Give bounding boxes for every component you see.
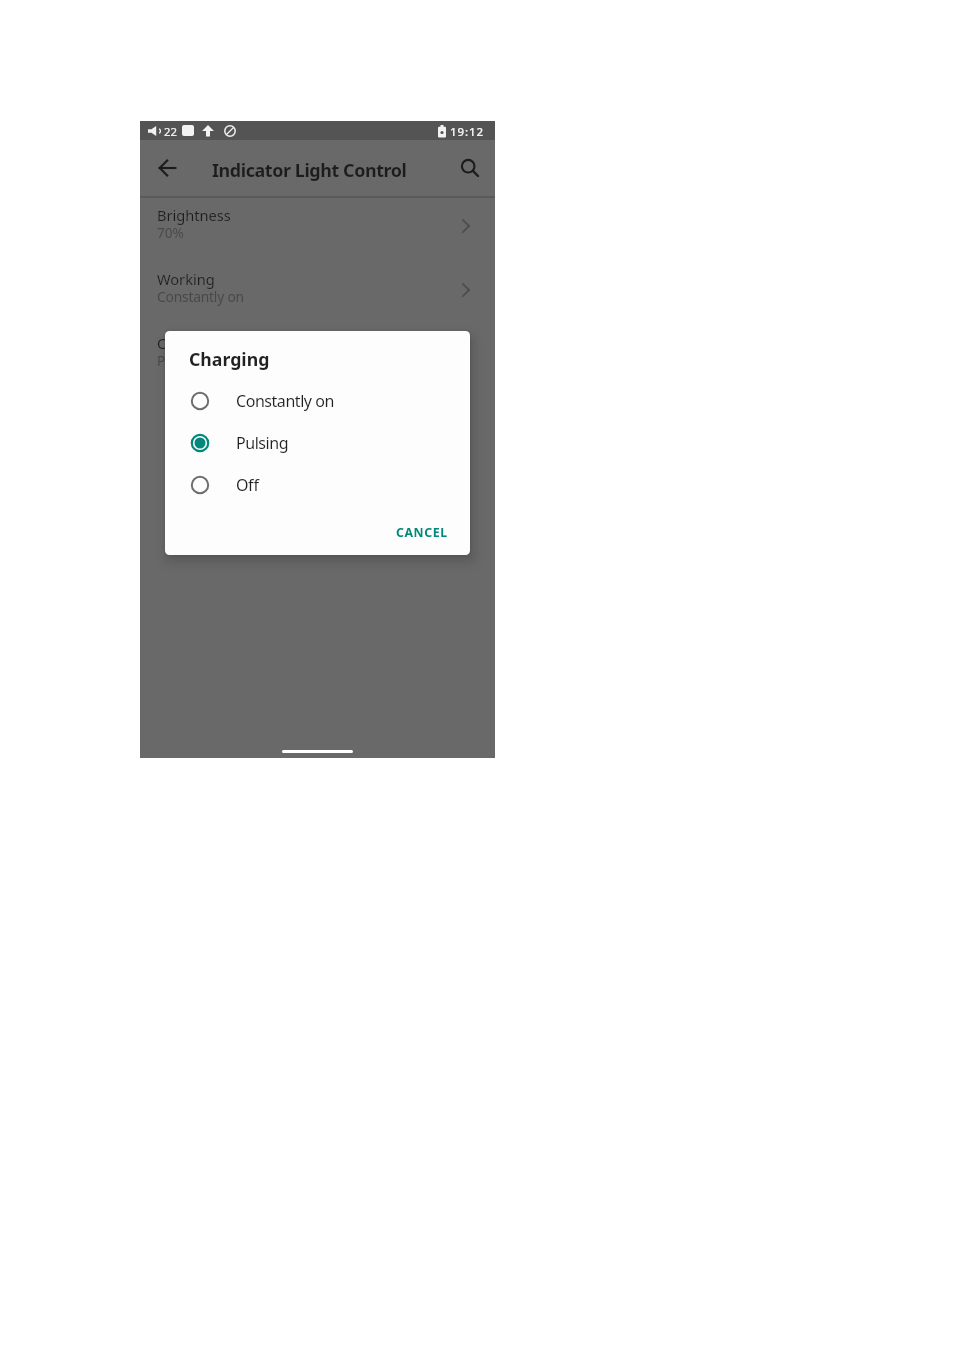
staticText: Indicator Light Control (212, 158, 407, 182)
button[interactable]: Working (140, 268, 495, 332)
button[interactable] (453, 151, 487, 185)
staticText: Brightness (157, 205, 231, 225)
staticText: Working (157, 269, 215, 289)
button[interactable]: Off (165, 464, 470, 506)
button[interactable] (150, 151, 184, 185)
button[interactable]: Brightness (140, 204, 495, 268)
staticText: Pulsing (157, 351, 205, 370)
button[interactable]: Pulsing (165, 422, 470, 464)
staticText: Pulsing (236, 432, 289, 454)
staticText: Off (236, 474, 259, 496)
staticText: 19:12 (450, 124, 484, 140)
staticText: Constantly on (236, 390, 334, 412)
staticText: 70% (157, 223, 184, 242)
button[interactable]: Charging (140, 332, 495, 396)
button[interactable]: CANCEL (384, 516, 460, 548)
staticText: CANCEL (396, 524, 448, 541)
staticText: Charging (157, 333, 221, 353)
staticText: Charging (189, 347, 270, 371)
staticText: 22 (164, 124, 178, 140)
staticText: Constantly on (157, 287, 244, 306)
button[interactable]: Constantly on (165, 380, 470, 422)
